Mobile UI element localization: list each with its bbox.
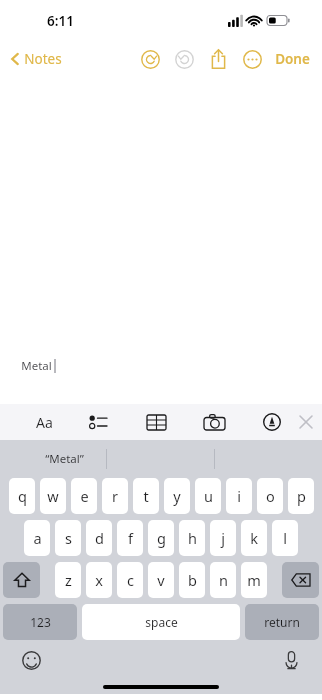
button[interactable]: m [241, 562, 267, 598]
staticText: z [65, 570, 72, 590]
staticText: s [65, 528, 72, 548]
button[interactable]: z [55, 562, 81, 598]
staticText: Aa [36, 413, 53, 432]
button[interactable]: Undo [133, 42, 167, 76]
button[interactable]: Done [271, 45, 314, 73]
button[interactable]: Dictation [274, 643, 308, 677]
button[interactable]: Camera [196, 406, 232, 438]
button[interactable]: x [86, 562, 112, 598]
staticText: p [297, 486, 306, 506]
staticText: n [219, 570, 228, 590]
staticText: 6:11 [47, 12, 74, 30]
staticText: Notes [24, 50, 62, 68]
button[interactable]: f [117, 520, 143, 556]
staticText: Done [275, 50, 310, 68]
staticText: d [95, 528, 104, 548]
button[interactable]: k [241, 520, 267, 556]
button[interactable]: Close keyboard [290, 406, 322, 438]
staticText: c [127, 570, 134, 590]
staticText: b [188, 570, 197, 590]
staticText: l [283, 528, 287, 548]
button[interactable]: w [40, 478, 66, 514]
button[interactable]: c [117, 562, 143, 598]
button[interactable]: g [148, 520, 174, 556]
staticText: u [204, 486, 213, 506]
staticText: return [264, 614, 300, 630]
button[interactable]: j [210, 520, 236, 556]
staticText: w [47, 486, 59, 506]
staticText: y [173, 486, 181, 506]
button[interactable]: Markup [254, 406, 290, 438]
button[interactable]: Emoji [14, 643, 48, 677]
button[interactable]: 123 [3, 604, 77, 640]
staticText: h [188, 528, 197, 548]
button[interactable]: i [226, 478, 252, 514]
button[interactable]: h [179, 520, 205, 556]
staticText: a [33, 528, 42, 548]
staticText: Metal [21, 358, 52, 374]
button[interactable]: n [210, 562, 236, 598]
button[interactable]: More options [235, 42, 269, 76]
button[interactable]: y [164, 478, 190, 514]
button[interactable]: p [288, 478, 314, 514]
button[interactable]: Notes [6, 46, 66, 72]
button[interactable]: e [71, 478, 97, 514]
staticText: m [247, 570, 261, 590]
button[interactable]: r [102, 478, 128, 514]
button[interactable]: s [55, 520, 81, 556]
button[interactable]: “Metal” [23, 442, 105, 476]
staticText: i [237, 486, 241, 506]
button[interactable]: Shift [3, 562, 40, 598]
button[interactable]: o [257, 478, 283, 514]
button[interactable]: space [82, 604, 240, 640]
staticText: k [250, 528, 258, 548]
button[interactable]: d [86, 520, 112, 556]
button[interactable]: Share [201, 42, 235, 76]
staticText: v [157, 570, 165, 590]
staticText: x [95, 570, 103, 590]
staticText: q [18, 486, 27, 506]
staticText: t [143, 486, 149, 506]
button[interactable]: Text format [26, 406, 62, 438]
button[interactable]: q [9, 478, 35, 514]
button[interactable]: Backspace [282, 562, 319, 598]
staticText: “Metal” [45, 451, 84, 467]
staticText: o [266, 486, 275, 506]
staticText: g [157, 528, 166, 548]
button[interactable]: t [133, 478, 159, 514]
button[interactable]: Checklist [80, 406, 116, 438]
button[interactable]: Table [138, 406, 174, 438]
staticText: r [112, 486, 118, 506]
staticText: space [145, 614, 178, 630]
staticText: 123 [30, 614, 51, 630]
staticText: e [80, 486, 89, 506]
button[interactable]: Redo [167, 42, 201, 76]
button[interactable]: l [272, 520, 298, 556]
button[interactable]: a [24, 520, 50, 556]
button[interactable]: b [179, 562, 205, 598]
staticText: j [221, 528, 225, 548]
button[interactable]: v [148, 562, 174, 598]
button[interactable]: u [195, 478, 221, 514]
button[interactable]: return [245, 604, 319, 640]
staticText: f [128, 528, 133, 548]
